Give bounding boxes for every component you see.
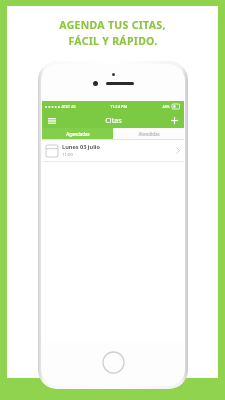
staticText: Citas xyxy=(105,115,122,125)
button[interactable]: Agendadas xyxy=(42,128,113,139)
button[interactable]: Lunes 03 julio xyxy=(42,140,184,161)
button[interactable]: Home xyxy=(102,351,125,374)
staticText: FÁCIL Y RÁPIDO. xyxy=(68,34,158,48)
staticText: Lunes 03 julio xyxy=(62,143,100,151)
staticText: Atendidas xyxy=(138,131,160,137)
staticText: Agendadas xyxy=(66,131,90,137)
button[interactable]: Menu xyxy=(45,114,58,127)
staticText: 11:00 xyxy=(62,152,73,158)
staticText: 11:14 PM xyxy=(110,104,127,109)
staticText: AGENDA TUS CITAS, xyxy=(59,18,166,32)
staticText: AT&T 4G xyxy=(61,104,76,109)
button[interactable]: Atendidas xyxy=(113,128,184,139)
button[interactable]: Add appointment xyxy=(168,114,181,127)
staticText: 44% xyxy=(162,104,170,109)
